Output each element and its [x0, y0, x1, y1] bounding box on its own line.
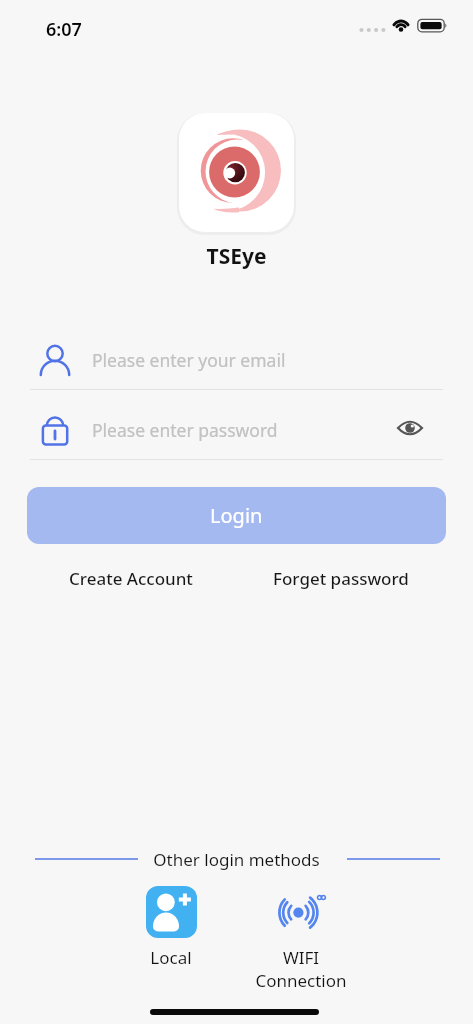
- staticText: Please enter password: [92, 418, 278, 442]
- button[interactable]: Forget password: [263, 564, 418, 592]
- staticText: Login: [210, 502, 263, 529]
- staticText: TSEye: [0, 242, 473, 271]
- staticText: Create Account: [69, 567, 193, 590]
- button[interactable]: [146, 886, 197, 938]
- staticText: Local: [121, 946, 221, 970]
- staticText: WIFI Connection: [231, 946, 371, 992]
- staticText: Please enter your email: [92, 348, 286, 372]
- button[interactable]: Create Account: [58, 564, 204, 592]
- button[interactable]: Login: [27, 487, 446, 544]
- staticText: 6:07: [46, 17, 82, 42]
- button[interactable]: [30, 406, 443, 459]
- staticText: Other login methods: [0, 848, 473, 871]
- staticText: Forget password: [273, 567, 409, 590]
- button[interactable]: [397, 417, 423, 439]
- button[interactable]: [30, 336, 443, 389]
- button[interactable]: [272, 886, 330, 938]
